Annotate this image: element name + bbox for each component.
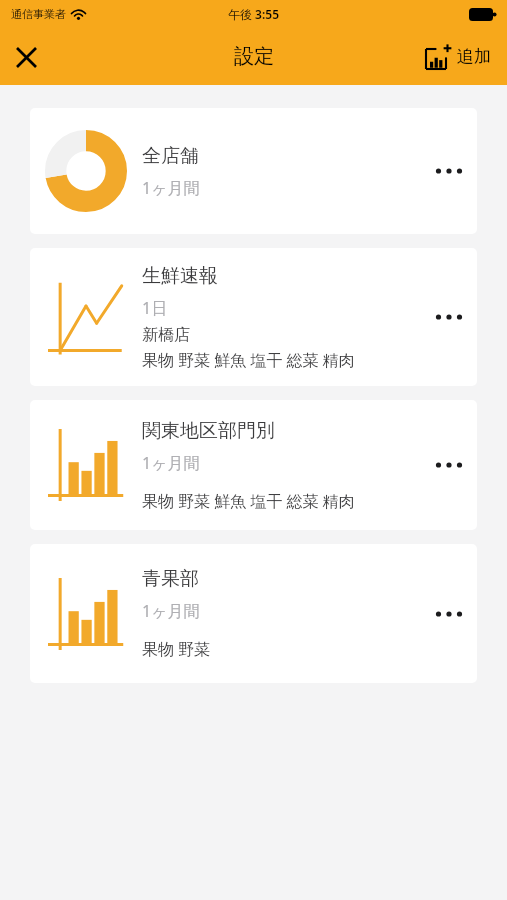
- staticText: 果物 野菜 鮮魚 塩干 総菜 精肉: [142, 349, 355, 371]
- staticText: 1ヶ月間: [142, 452, 200, 474]
- staticText: 午後 3:55: [228, 6, 280, 22]
- staticText: 果物 野菜: [142, 638, 211, 660]
- button[interactable]: 関東地区部門別: [30, 400, 477, 530]
- button[interactable]: その他の操作: [421, 400, 477, 530]
- button[interactable]: 生鮮速報: [30, 248, 477, 386]
- staticText: 全店舗: [142, 144, 199, 168]
- button[interactable]: その他の操作: [421, 108, 477, 234]
- staticText: 1日: [142, 297, 168, 319]
- staticText: 関東地区部門別: [142, 419, 275, 443]
- button[interactable]: その他の操作: [421, 248, 477, 386]
- staticText: 通信事業者: [11, 7, 66, 21]
- button[interactable]: 追加: [422, 40, 495, 73]
- button[interactable]: その他の操作: [421, 544, 477, 683]
- button[interactable]: 青果部: [30, 544, 477, 683]
- staticText: 生鮮速報: [142, 264, 218, 288]
- staticText: 青果部: [142, 567, 199, 591]
- staticText: 新橋店: [142, 325, 190, 345]
- staticText: 設定: [234, 44, 274, 69]
- staticText: 1ヶ月間: [142, 600, 200, 622]
- staticText: 追加: [457, 46, 491, 67]
- staticText: 1ヶ月間: [142, 177, 200, 199]
- button[interactable]: 全店舗: [30, 108, 477, 234]
- staticText: 果物 野菜 鮮魚 塩干 総菜 精肉: [142, 490, 355, 512]
- button[interactable]: 閉じる: [0, 31, 52, 83]
